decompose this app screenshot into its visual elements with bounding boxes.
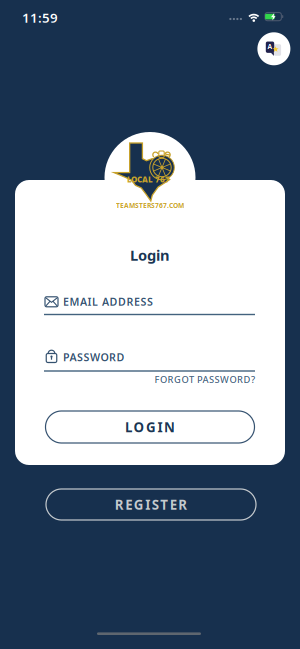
staticText: PASSWORD bbox=[63, 350, 124, 364]
staticText: FORGOT PASSWORD? bbox=[154, 373, 255, 386]
staticText: A bbox=[267, 42, 272, 51]
button[interactable]: Translate bbox=[257, 32, 290, 65]
staticText: Login bbox=[130, 245, 170, 265]
staticText: TEAMSTERS767.COM bbox=[116, 201, 184, 210]
button[interactable]: FORGOT PASSWORD? bbox=[135, 373, 255, 386]
button[interactable]: REGISTER bbox=[46, 489, 256, 520]
staticText: 11:59 bbox=[22, 9, 58, 26]
staticText: LOCAL 767 bbox=[127, 174, 170, 185]
staticText: LOGIN bbox=[125, 418, 175, 436]
staticText: EMAIL ADDRESS bbox=[63, 294, 153, 309]
staticText: REGISTER bbox=[115, 496, 187, 513]
button[interactable]: LOGIN bbox=[45, 411, 254, 443]
